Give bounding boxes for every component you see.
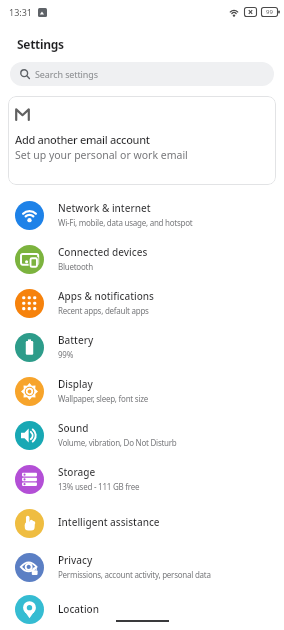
staticText: Search settings <box>35 68 98 80</box>
staticText: 99 <box>266 8 273 16</box>
staticText: Apps & notifications <box>58 289 154 303</box>
staticText: Location <box>58 602 99 616</box>
staticText: 13:31 <box>9 6 33 18</box>
staticText: Intelligent assistance <box>58 515 160 529</box>
staticText: Settings <box>17 36 64 52</box>
staticText: Network & internet <box>58 201 151 215</box>
staticText: 99% <box>58 349 74 360</box>
staticText: Connected devices <box>58 245 148 259</box>
staticText: Sound <box>58 421 89 435</box>
staticText: Wallpaper, sleep, font size <box>58 393 148 404</box>
staticText: Privacy <box>58 553 93 567</box>
staticText: Wi-Fi, mobile, data usage, and hotspot <box>58 217 193 228</box>
staticText: Add another email account <box>15 132 150 147</box>
staticText: Storage <box>58 465 96 479</box>
button[interactable]: Apps & notifications <box>0 281 284 325</box>
button[interactable]: Battery <box>0 325 284 369</box>
button[interactable]: Search settings <box>10 62 274 86</box>
staticText: Recent apps, default apps <box>58 305 149 316</box>
staticText: Set up your personal or work email <box>15 148 188 162</box>
staticText: Permissions, account activity, personal … <box>58 569 211 580</box>
button[interactable]: Network & internet <box>0 193 284 237</box>
staticText: Volume, vibration, Do Not Disturb <box>58 437 177 448</box>
button[interactable]: Display <box>0 369 284 413</box>
button[interactable]: Storage <box>0 457 284 501</box>
button[interactable]: Connected devices <box>0 237 284 281</box>
button[interactable]: Location <box>0 589 284 630</box>
staticText: 13% used - 111 GB free <box>58 481 140 492</box>
button[interactable]: Sound <box>0 413 284 457</box>
button[interactable]: Intelligent assistance <box>0 501 284 545</box>
staticText: Display <box>58 377 93 391</box>
button[interactable]: Add another email account <box>8 96 276 185</box>
button[interactable]: Privacy <box>0 545 284 589</box>
staticText: Battery <box>58 333 94 347</box>
staticText: Bluetooth <box>58 261 93 272</box>
